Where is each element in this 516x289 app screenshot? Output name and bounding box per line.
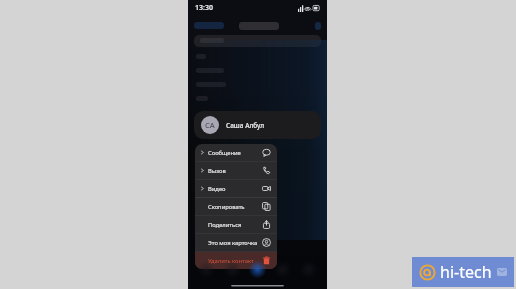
- button[interactable]: Видео: [195, 180, 277, 197]
- button[interactable]: Вызов: [195, 162, 277, 179]
- button[interactable]: Сообщение: [195, 144, 277, 161]
- staticText: Сообщение: [208, 149, 241, 157]
- button[interactable]: Скопировать: [195, 198, 277, 215]
- staticText: Удалить контакт: [208, 257, 254, 265]
- staticText: 13:30: [195, 3, 213, 13]
- button[interactable]: CA: [194, 111, 321, 139]
- staticText: Это моя карточка: [208, 239, 258, 247]
- staticText: Видео: [208, 185, 226, 193]
- staticText: CA: [205, 120, 215, 130]
- staticText: Поделиться: [208, 221, 242, 229]
- staticText: hi-tech: [440, 261, 492, 283]
- button[interactable]: Поделиться: [195, 216, 277, 233]
- button[interactable]: Это моя карточка: [195, 234, 277, 251]
- staticText: Саша Албул: [226, 121, 265, 130]
- staticText: Вызов: [208, 167, 226, 175]
- staticText: Скопировать: [208, 203, 245, 211]
- button[interactable]: Удалить контакт: [195, 252, 277, 269]
